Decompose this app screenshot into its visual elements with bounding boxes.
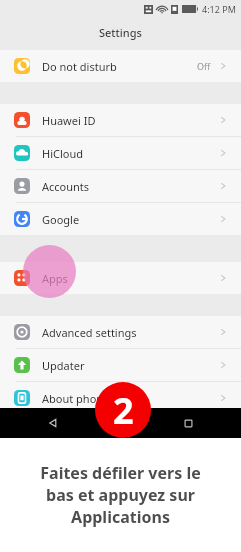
button[interactable]: Updater <box>0 349 241 381</box>
button[interactable]: Advanced settings <box>0 316 241 348</box>
staticText: Advanced settings <box>42 325 219 340</box>
button[interactable]: Google <box>0 203 241 235</box>
button[interactable]: Home <box>106 408 136 438</box>
button[interactable]: Do not disturb <box>0 50 241 82</box>
button[interactable]: Accounts <box>0 170 241 202</box>
staticText: Apps <box>42 271 219 286</box>
staticText: Updater <box>42 358 219 373</box>
staticText: About phone <box>42 391 219 406</box>
staticText: 4:12 PM <box>202 3 236 15</box>
button[interactable]: Recent apps <box>173 408 203 438</box>
button[interactable]: Apps <box>0 262 241 294</box>
button[interactable]: Huawei ID <box>0 104 241 136</box>
staticText: Settings <box>99 25 142 40</box>
staticText: Faites défiler vers le bas et appuyez su… <box>40 462 201 528</box>
button[interactable]: HiCloud <box>0 137 241 169</box>
button[interactable]: About phone <box>0 382 241 414</box>
staticText: Accounts <box>42 179 219 194</box>
staticText: Do not disturb <box>42 59 197 74</box>
staticText: 2 <box>113 386 134 435</box>
staticText: Off <box>197 60 211 72</box>
button[interactable]: Back <box>38 408 68 438</box>
staticText: Huawei ID <box>42 113 219 128</box>
staticText: Google <box>42 212 219 227</box>
staticText: HiCloud <box>42 146 219 161</box>
